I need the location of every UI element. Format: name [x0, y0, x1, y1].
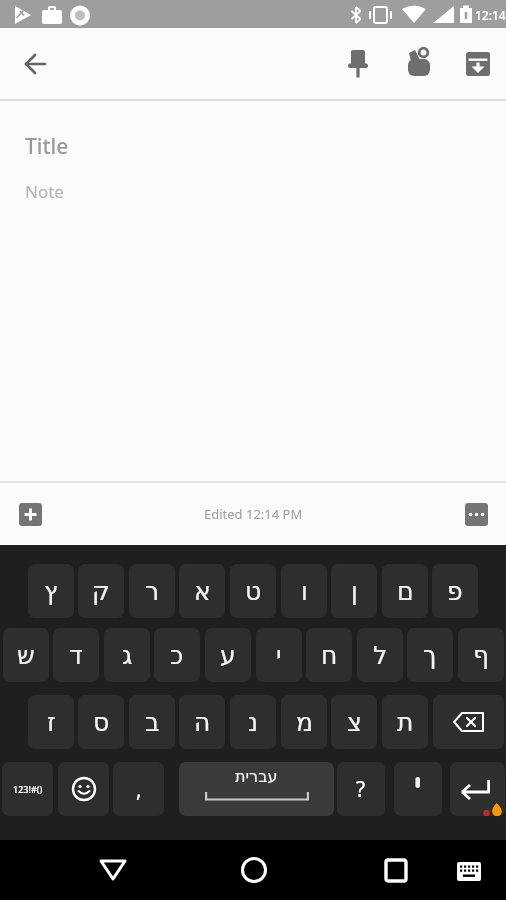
staticText: ף	[473, 641, 489, 670]
button[interactable]: ף	[458, 628, 504, 682]
button[interactable]: ג	[104, 628, 150, 682]
staticText: 123!#()	[13, 783, 43, 795]
button[interactable]: ,	[113, 762, 164, 816]
button[interactable]: פ	[432, 564, 478, 618]
staticText: ב	[145, 708, 160, 737]
button[interactable]: ?	[337, 762, 385, 816]
staticText: א	[194, 577, 211, 606]
button[interactable]	[229, 846, 277, 894]
button[interactable]	[457, 43, 499, 85]
button[interactable]: ה	[179, 695, 225, 749]
button[interactable]: ו	[281, 564, 327, 618]
staticText: ת	[397, 708, 414, 737]
staticText: Note	[25, 180, 64, 203]
staticText: ?	[356, 775, 366, 804]
staticText: פ	[447, 577, 463, 606]
button[interactable]: ת	[382, 695, 428, 749]
staticText: ג	[122, 641, 133, 670]
button[interactable]: ר	[129, 564, 175, 618]
button[interactable]: ד	[53, 628, 99, 682]
button[interactable]: מ	[281, 695, 327, 749]
button[interactable]: ם	[382, 564, 428, 618]
staticText: ח	[321, 641, 338, 670]
staticText: ד	[69, 641, 83, 670]
staticText: ץ	[44, 577, 58, 606]
button[interactable]	[433, 695, 504, 749]
staticText: ש	[17, 641, 35, 670]
staticText: ט	[245, 577, 262, 606]
button[interactable]	[19, 503, 42, 526]
button[interactable]: ש	[3, 628, 49, 682]
button[interactable]: צ	[331, 695, 377, 749]
staticText: י	[276, 641, 282, 670]
button[interactable]: ס	[78, 695, 124, 749]
button[interactable]: ע	[205, 628, 251, 682]
button[interactable]: א	[179, 564, 225, 618]
button[interactable]: כ	[154, 628, 200, 682]
staticText: כ	[170, 641, 184, 670]
staticText: ל	[373, 641, 388, 670]
button[interactable]: ז	[28, 695, 74, 749]
button[interactable]: ל	[357, 628, 403, 682]
staticText: ז	[47, 708, 56, 737]
button[interactable]	[397, 43, 439, 85]
button[interactable]: ט	[230, 564, 276, 618]
staticText: Title	[25, 132, 69, 161]
button[interactable]: ב	[129, 695, 175, 749]
button[interactable]: ך	[407, 628, 453, 682]
staticText: מ	[296, 708, 313, 737]
button[interactable]	[394, 762, 442, 816]
button[interactable]: ק	[78, 564, 124, 618]
button[interactable]	[89, 846, 137, 894]
button[interactable]: ן	[331, 564, 377, 618]
button[interactable]: ץ	[28, 564, 74, 618]
staticText: ם	[397, 577, 414, 606]
button[interactable]	[14, 43, 56, 85]
staticText: ס	[93, 708, 110, 737]
button[interactable]	[372, 846, 420, 894]
staticText: ך	[423, 641, 437, 670]
button[interactable]: ח	[306, 628, 352, 682]
staticText: נ	[248, 708, 259, 737]
staticText: ו	[301, 577, 308, 606]
button[interactable]	[58, 762, 109, 816]
staticText: ר	[145, 577, 160, 606]
button[interactable]: 123!#()	[2, 762, 53, 816]
staticText: ה	[194, 708, 211, 737]
staticText: ן	[351, 577, 358, 606]
staticText: 12:14	[475, 7, 506, 23]
button[interactable]: נ	[230, 695, 276, 749]
button[interactable]	[465, 503, 488, 526]
button[interactable]	[450, 762, 505, 816]
button[interactable]: י	[256, 628, 302, 682]
staticText: עברית	[235, 767, 278, 786]
button[interactable]: עברית	[179, 762, 334, 816]
staticText: ק	[92, 577, 110, 606]
button[interactable]	[337, 43, 379, 85]
button[interactable]	[445, 846, 493, 894]
staticText: צ	[347, 708, 362, 737]
staticText: ,	[136, 775, 142, 804]
staticText: Edited 12:14 PM	[204, 505, 303, 523]
staticText: ע	[220, 641, 236, 670]
